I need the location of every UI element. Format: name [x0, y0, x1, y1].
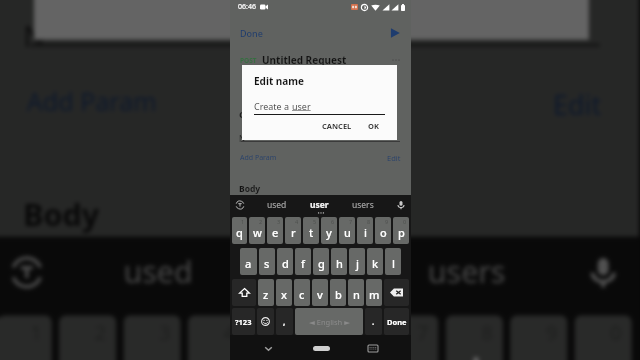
button[interactable]: 3 — [123, 315, 181, 360]
button[interactable]: g — [313, 248, 329, 275]
button[interactable]: 7 — [381, 315, 438, 360]
button[interactable]: ?123 — [232, 308, 255, 335]
staticText: w — [253, 225, 262, 240]
button[interactable]: x — [276, 279, 292, 306]
button[interactable]: z — [258, 279, 274, 306]
button[interactable]: 0 — [574, 315, 632, 360]
button[interactable]: Add Param — [240, 153, 277, 163]
button[interactable]: Emoji — [257, 308, 274, 335]
staticText: POST — [240, 56, 257, 65]
button[interactable]: 1 — [232, 217, 247, 244]
button[interactable]: used — [123, 251, 195, 294]
staticText: C — [239, 108, 245, 120]
button[interactable]: Send request — [389, 27, 401, 39]
button[interactable]: Edit — [553, 86, 603, 122]
button[interactable]: 8 — [357, 217, 373, 244]
button[interactable]: 5 — [303, 217, 319, 244]
button[interactable]: Add Param — [27, 86, 159, 122]
button[interactable]: 5 — [252, 315, 310, 360]
staticText: Body — [239, 183, 261, 195]
staticText: 3 — [277, 218, 281, 225]
button[interactable]: CANCEL — [320, 119, 354, 133]
button[interactable]: n — [348, 279, 364, 306]
button[interactable]: . — [365, 308, 382, 335]
staticText: Add Param — [27, 86, 159, 122]
staticText: e — [272, 225, 279, 240]
button[interactable]: h — [331, 248, 347, 275]
staticText: 06:46 — [238, 2, 256, 12]
button[interactable]: 6 — [317, 315, 374, 360]
button[interactable]: a — [240, 248, 257, 275]
button[interactable]: f — [295, 248, 311, 275]
button[interactable]: Shift — [232, 279, 256, 306]
button[interactable]: 9 — [375, 217, 391, 244]
staticText: Edit — [387, 153, 401, 163]
staticText: ?123 — [235, 317, 252, 327]
button[interactable]: 4 — [285, 217, 301, 244]
button[interactable]: 6 — [321, 217, 337, 244]
staticText: d — [282, 256, 289, 271]
button[interactable]: Undo — [5, 251, 48, 294]
button[interactable]: 8 — [446, 315, 503, 360]
button[interactable]: Hide keyboard — [257, 337, 279, 359]
button[interactable]: OK — [366, 119, 381, 133]
staticText: users — [352, 199, 374, 211]
staticText: 6 — [353, 319, 367, 344]
staticText: p — [398, 225, 405, 240]
button[interactable]: 7 — [339, 217, 355, 244]
button[interactable]: j — [349, 248, 365, 275]
button[interactable]: d — [277, 248, 293, 275]
button[interactable]: Done — [384, 308, 409, 335]
button[interactable]: v — [312, 279, 328, 306]
button[interactable]: Edit — [387, 153, 401, 163]
staticText: 7 — [349, 218, 353, 225]
button[interactable]: 2 — [249, 217, 265, 244]
button[interactable]: users — [428, 251, 507, 294]
button[interactable]: 3 — [267, 217, 283, 244]
button[interactable]: , — [276, 308, 293, 335]
button[interactable]: 0 — [393, 217, 409, 244]
staticText: m — [369, 287, 380, 302]
button[interactable]: 9 — [510, 315, 567, 360]
button[interactable]: Voice input — [582, 251, 625, 294]
button[interactable]: 2 — [59, 315, 116, 360]
button[interactable]: 1 — [0, 315, 52, 360]
button[interactable]: Done — [240, 27, 263, 39]
button[interactable]: More options — [391, 55, 401, 65]
button[interactable]: used — [267, 199, 287, 211]
staticText: c — [299, 287, 305, 302]
button[interactable]: CANCEL — [313, 0, 435, 15]
button[interactable]: c — [294, 279, 310, 306]
button[interactable]: Backspace — [384, 279, 409, 306]
staticText: Create a — [254, 100, 292, 112]
button[interactable]: Voice input — [395, 199, 407, 211]
staticText: h — [336, 256, 343, 271]
button[interactable]: user — [310, 199, 329, 211]
staticText: 1 — [241, 218, 245, 225]
button[interactable]: 4 — [188, 315, 245, 360]
button[interactable]: b — [330, 279, 346, 306]
button[interactable]: ◄ English ► — [295, 308, 363, 335]
button[interactable]: user — [277, 251, 345, 294]
staticText: . — [372, 316, 375, 327]
button[interactable]: l — [385, 248, 401, 275]
staticText: CANCEL — [320, 0, 428, 7]
staticText: u — [399, 344, 424, 360]
button[interactable]: m — [366, 279, 382, 306]
button[interactable]: k — [367, 248, 383, 275]
button[interactable]: Undo — [234, 199, 246, 211]
button[interactable]: Home — [306, 337, 336, 359]
button[interactable]: users — [352, 199, 374, 211]
staticText: k — [372, 256, 379, 271]
staticText: OK — [368, 121, 379, 131]
button[interactable]: s — [259, 248, 275, 275]
button[interactable]: Switch keyboard — [362, 337, 384, 359]
staticText: Untitled Request — [262, 53, 347, 67]
